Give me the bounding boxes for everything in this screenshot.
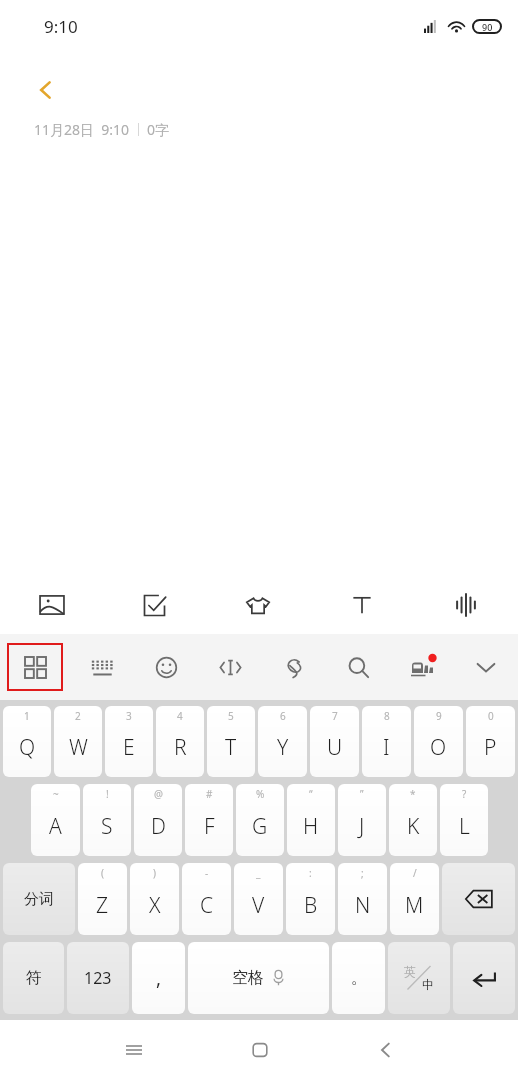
button[interactable]: 9 [414,706,463,777]
button[interactable]: 0 [466,706,515,777]
button[interactable]: Image [0,576,103,634]
button[interactable]: ( [78,863,127,935]
button[interactable]: Back [323,1020,449,1080]
button[interactable]: Emoji [134,634,198,700]
staticText: 符 [26,968,42,988]
button[interactable]: @ [134,784,182,856]
staticText: T [225,733,237,762]
button[interactable]: Voice [414,576,518,634]
staticText: V [252,891,265,920]
button[interactable]: Text style [310,576,414,634]
staticText: ( [101,866,104,880]
button[interactable]: Home [197,1020,323,1080]
button[interactable]: ! [83,784,131,856]
staticText: J [359,812,365,841]
button[interactable]: ” [338,784,386,856]
staticText: Z [96,891,109,920]
staticText: X [149,891,161,920]
staticText: 9:10 [44,15,78,38]
button[interactable]: Back [26,70,66,110]
staticText: E [123,733,135,762]
button[interactable]: % [236,784,284,856]
button[interactable]: ; [338,863,387,935]
staticText: % [256,787,265,801]
staticText: O [430,733,447,762]
button[interactable]: 6 [258,706,307,777]
staticText: A [49,812,62,841]
staticText: ; [361,866,364,880]
button[interactable]: * [389,784,437,856]
button[interactable]: : [286,863,335,935]
button[interactable]: 123 [67,942,129,1014]
staticText: # [206,787,213,801]
staticText: C [200,891,214,920]
button[interactable]: Cursor [198,634,262,700]
staticText: N [355,891,371,920]
button[interactable]: 。 [332,942,385,1014]
staticText: : [309,866,312,880]
button[interactable]: Panel [0,634,70,700]
button[interactable]: ) [130,863,179,935]
staticText: W [69,733,88,762]
button[interactable]: Clip [262,634,326,700]
button[interactable]: Template [206,576,310,634]
staticText: H [303,812,319,841]
button[interactable]: 8 [362,706,411,777]
button[interactable]: / [390,863,439,935]
staticText: R [174,733,187,762]
staticText: I [383,733,390,762]
staticText: F [204,812,215,841]
staticText: 6 [280,709,286,723]
staticText: ~ [53,787,59,801]
staticText: 90 [482,21,493,33]
button[interactable]: 分词 [3,863,75,935]
staticText: 1 [24,709,30,723]
button[interactable]: Express [390,634,454,700]
button[interactable]: _ [234,863,283,935]
staticText: - [205,866,209,880]
staticText: M [405,891,424,920]
staticText: G [252,812,268,841]
button[interactable]: , [132,942,185,1014]
button[interactable]: Language [388,942,450,1014]
button[interactable]: Keyboard [70,634,134,700]
button[interactable]: Backspace [442,863,515,935]
button[interactable]: ? [440,784,488,856]
staticText: Q [19,733,36,762]
staticText: S [101,812,113,841]
staticText: 5 [228,709,234,723]
button[interactable]: 2 [54,706,102,777]
button[interactable]: 3 [105,706,153,777]
button[interactable]: Checklist [103,576,206,634]
staticText: ) [153,866,156,880]
button[interactable]: Enter [453,942,515,1014]
staticText: D [151,812,166,841]
staticText: Y [277,733,289,762]
staticText: 分词 [24,890,54,909]
button[interactable]: 7 [310,706,359,777]
button[interactable]: ~ [31,784,80,856]
staticText: ” [360,787,364,801]
staticText: 7 [332,709,338,723]
staticText: _ [256,866,261,880]
staticText: 123 [84,967,112,989]
button[interactable]: Space [188,942,329,1014]
staticText: 0字 [147,120,170,139]
staticText: L [459,812,470,841]
button[interactable]: Recents [70,1020,197,1080]
staticText: 2 [75,709,81,723]
button[interactable]: 符 [3,942,64,1014]
button[interactable]: 1 [3,706,51,777]
button[interactable]: # [185,784,233,856]
button[interactable]: - [182,863,231,935]
button[interactable]: “ [287,784,335,856]
staticText: / [413,866,417,880]
staticText: 空格 [232,968,264,988]
button[interactable]: 5 [207,706,255,777]
button[interactable]: 4 [156,706,204,777]
staticText: * [410,787,416,801]
staticText: 0 [488,709,494,723]
staticText: 。 [351,968,367,988]
button[interactable]: Hide [454,634,518,700]
button[interactable]: Search [326,634,390,700]
